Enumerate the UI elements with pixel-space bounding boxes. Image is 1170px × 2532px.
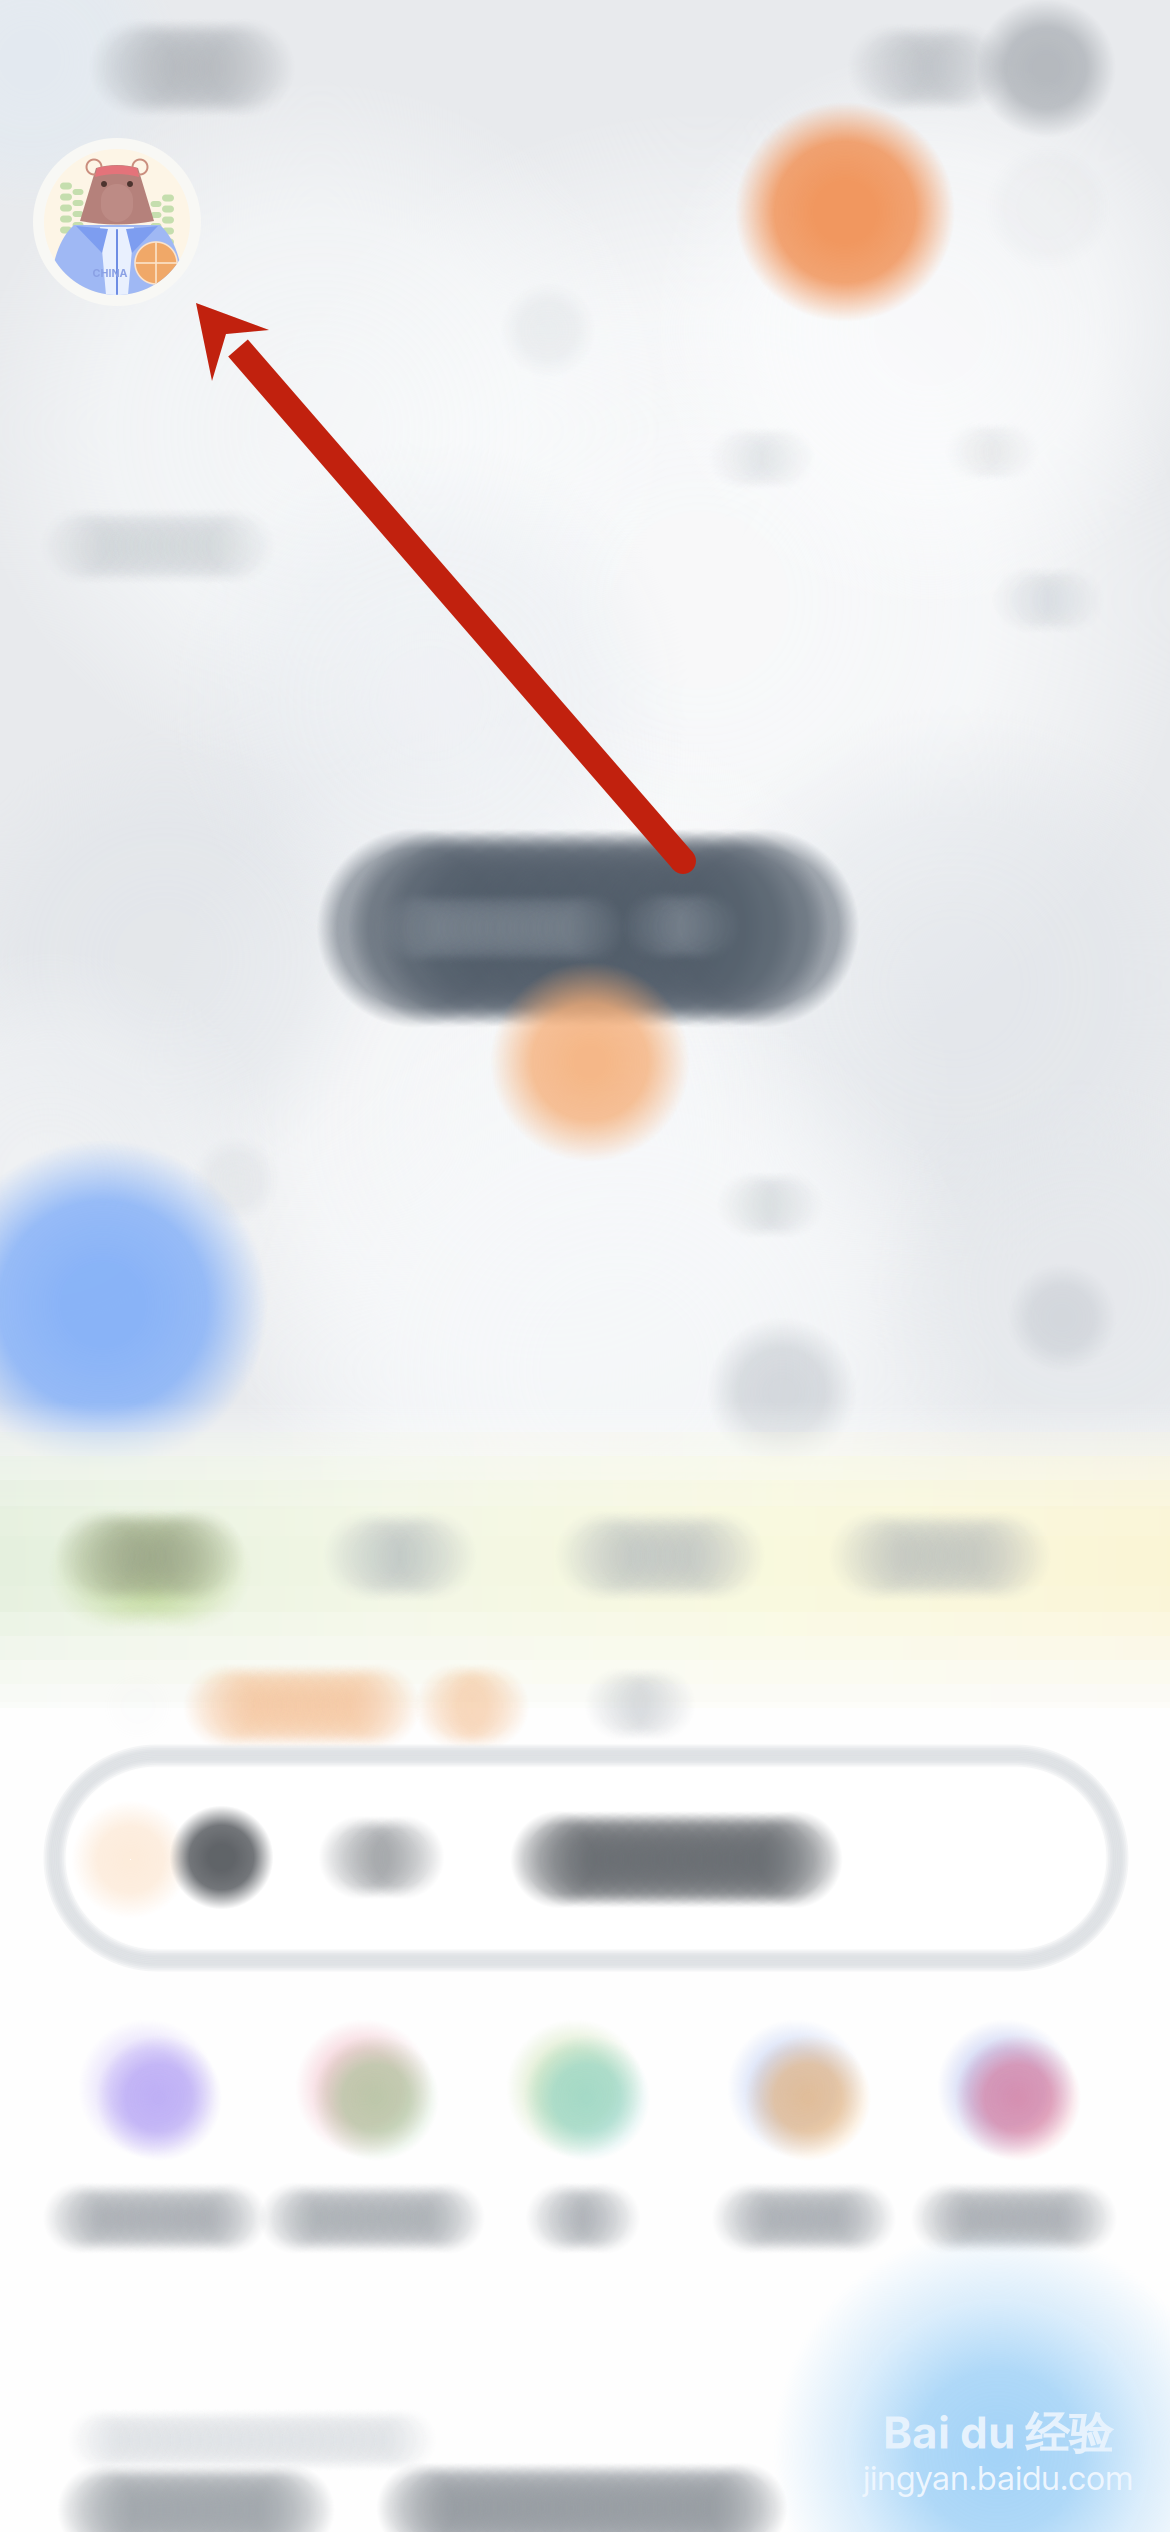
button[interactable]: Profile — [33, 138, 201, 306]
button[interactable]: Nearby — [26, 1498, 276, 1618]
button[interactable]: More — [912, 1988, 1116, 2268]
staticText: jingyan.baidu.com — [863, 2458, 1133, 2498]
button[interactable]: Route — [276, 1498, 526, 1618]
button[interactable]: Food — [270, 1988, 474, 2268]
button[interactable]: Nearby — [735, 102, 955, 322]
button[interactable]: Explore — [796, 1498, 1076, 1618]
button[interactable]: Transit — [526, 1498, 796, 1618]
button[interactable]: Bus — [481, 1988, 685, 2268]
staticText: CHINA — [92, 266, 127, 279]
button[interactable]: Hotels — [53, 1988, 257, 2268]
button[interactable]: Taxi — [702, 1988, 906, 2268]
button[interactable]: Place — [301, 827, 875, 1029]
staticText: Bai du 经验 — [883, 2406, 1113, 2462]
button[interactable]: Search here — [54, 1755, 1117, 1960]
